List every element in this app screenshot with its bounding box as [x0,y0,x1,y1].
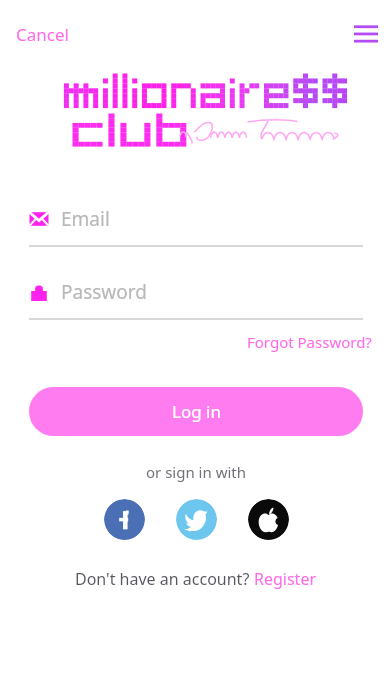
staticText: Password [61,279,147,305]
button[interactable]: Register [254,568,317,590]
staticText: Cancel [16,23,69,46]
button[interactable]: Sign in with Twitter [176,499,217,540]
other: Password [29,282,49,302]
button[interactable]: Menu [346,14,386,54]
staticText: Forgot Password? [247,332,372,352]
staticText: or sign in with [146,462,247,482]
button[interactable]: Email [29,202,363,247]
button[interactable]: Sign in with Apple [248,499,289,540]
other: Email [29,209,49,229]
staticText: Log in [172,400,221,423]
staticText: Don't have an account? [75,568,254,590]
button[interactable]: Log in [29,387,363,436]
button[interactable]: Cancel [6,15,79,54]
button[interactable]: Password [29,275,363,320]
staticText: Register [254,568,317,590]
button[interactable]: Forgot Password? [243,328,376,356]
staticText: Email [61,206,110,232]
button[interactable]: Sign in with Facebook [104,499,145,540]
